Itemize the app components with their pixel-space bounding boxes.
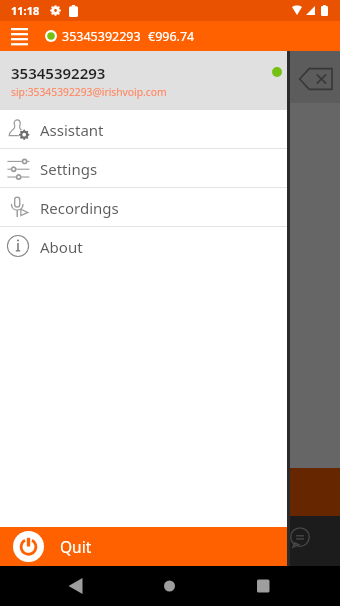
staticText: 11:18 xyxy=(11,3,40,18)
button[interactable]: Quit xyxy=(0,527,287,566)
button[interactable]: Settings xyxy=(0,149,287,188)
staticText: €996.74 xyxy=(148,28,195,45)
staticText: Assistant xyxy=(40,120,104,140)
staticText: 35345392293 xyxy=(62,28,141,45)
staticText: Quit xyxy=(60,536,92,557)
button[interactable]: Recordings xyxy=(0,188,287,227)
staticText: About xyxy=(40,237,83,257)
staticText: Settings xyxy=(40,159,98,179)
button[interactable]: Assistant xyxy=(0,110,287,149)
button[interactable]: Back xyxy=(0,566,114,606)
button[interactable]: Home xyxy=(114,566,227,606)
button[interactable]: About xyxy=(0,227,287,266)
staticText: 35345392293 xyxy=(11,63,106,83)
button[interactable]: Messages xyxy=(284,522,316,554)
staticText: Recordings xyxy=(40,198,119,218)
staticText: sip:35345392293@irishvoip.com xyxy=(11,85,167,99)
button[interactable]: Open navigation menu xyxy=(11,27,28,46)
button[interactable]: Backspace xyxy=(294,61,338,97)
button[interactable]: Recent apps xyxy=(227,566,340,606)
